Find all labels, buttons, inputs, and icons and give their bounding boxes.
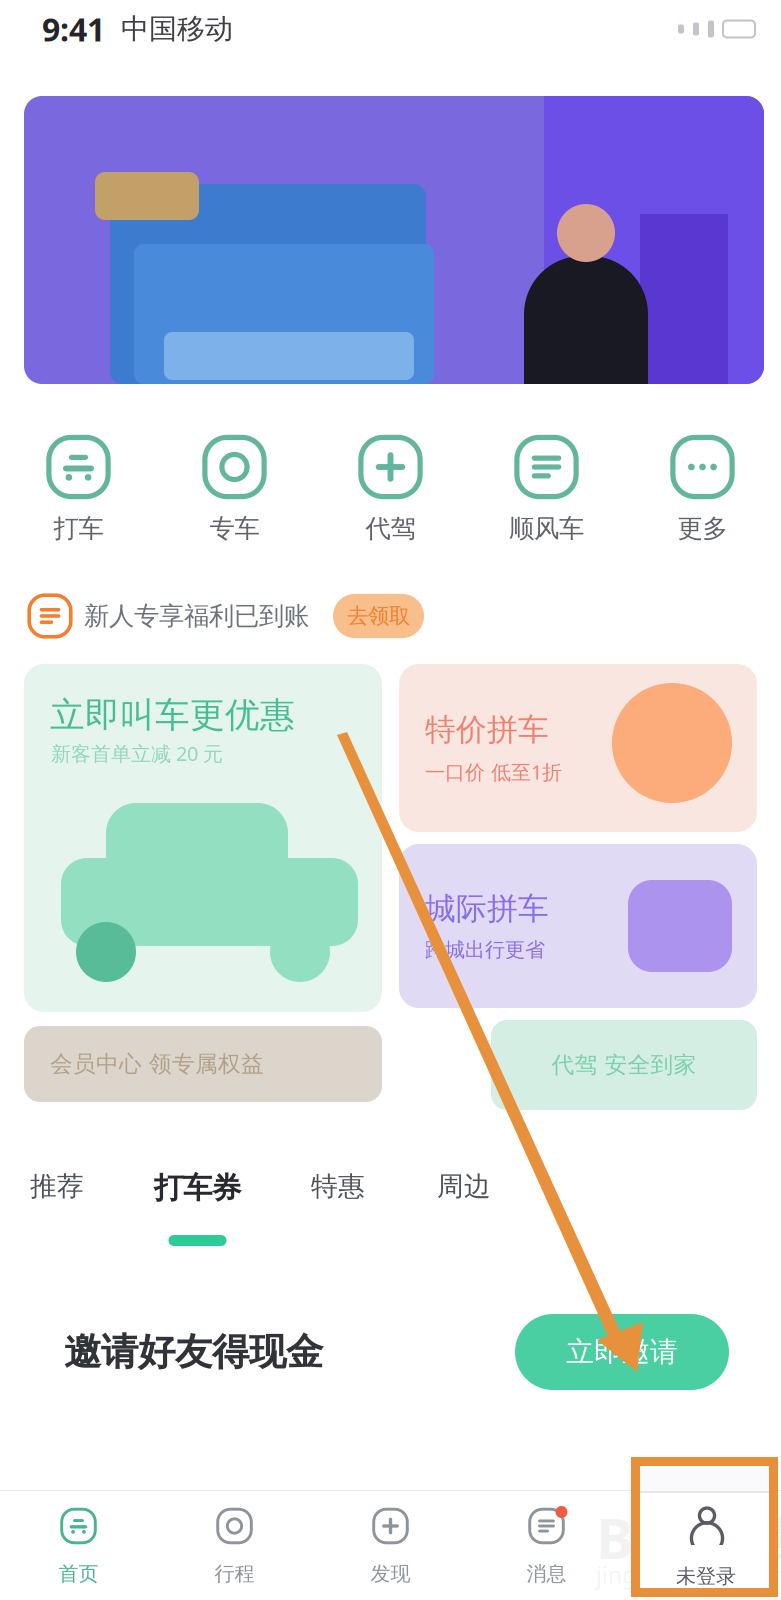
staticText: 消息 xyxy=(526,1561,566,1586)
staticText: 顺风车 xyxy=(509,513,584,544)
staticText: 推荐 xyxy=(30,1170,84,1203)
staticText: 特惠 xyxy=(311,1170,365,1203)
staticText: 更多 xyxy=(677,513,727,544)
button[interactable]: 城际拼车 xyxy=(399,844,757,1008)
staticText: 代驾 安全到家 xyxy=(551,1051,696,1079)
staticText: 立即叫车更优惠 xyxy=(50,694,295,737)
button[interactable]: 打车 xyxy=(0,400,156,570)
button[interactable]: 未登录 xyxy=(624,1491,780,1600)
button[interactable]: 推荐 xyxy=(28,1170,86,1243)
staticText: 周边 xyxy=(437,1170,491,1203)
staticText: 邀请好友得现金 xyxy=(64,1329,323,1375)
staticText: 一口价 低至1折 xyxy=(425,759,562,785)
staticText: 跨城出行更省 xyxy=(425,938,545,962)
staticText: 特价拼车 xyxy=(425,711,549,749)
button[interactable]: 首页 xyxy=(0,1491,156,1600)
button[interactable]: 消息 xyxy=(468,1491,624,1600)
staticText: 城际拼车 xyxy=(425,890,549,928)
staticText: 未登录 xyxy=(676,1564,736,1589)
button[interactable]: 专车 xyxy=(156,400,312,570)
button[interactable]: 发现 xyxy=(312,1491,468,1600)
staticText: 打车 xyxy=(53,513,103,544)
staticText: 新客首单立减 20 元 xyxy=(51,740,223,767)
button[interactable]: 代驾 xyxy=(312,400,468,570)
button[interactable]: 立即邀请 xyxy=(515,1314,729,1390)
button[interactable]: 行程 xyxy=(156,1491,312,1600)
staticText: 打车券 xyxy=(154,1170,241,1206)
staticText: 专车 xyxy=(209,513,259,544)
button[interactable]: 会员中心 领专属权益 xyxy=(24,1026,382,1102)
button[interactable] xyxy=(0,88,781,400)
button[interactable]: 特惠 xyxy=(309,1170,367,1243)
staticText: 9:41 xyxy=(42,8,105,50)
button[interactable]: 代驾 安全到家 xyxy=(491,1020,757,1110)
staticText: 新人专享福利已到账 xyxy=(84,600,309,631)
staticText: 立即邀请 xyxy=(566,1335,678,1369)
button[interactable]: 顺风车 xyxy=(468,400,624,570)
staticText: jingyan.baidu.com xyxy=(596,1560,781,1590)
staticText: 未登录 xyxy=(672,1561,732,1586)
button[interactable]: 特价拼车 xyxy=(399,664,757,832)
staticText: 会员中心 领专属权益 xyxy=(50,1050,264,1078)
staticText: 中国移动 xyxy=(105,12,233,46)
staticText: 发现 xyxy=(370,1561,410,1586)
button[interactable]: 打车券 xyxy=(154,1170,241,1246)
button[interactable]: 周边 xyxy=(435,1170,493,1243)
staticText: 首页 xyxy=(58,1561,98,1586)
button[interactable]: 更多 xyxy=(624,400,780,570)
button[interactable]: 新人专享福利已到账 xyxy=(0,570,781,662)
staticText: 去领取 xyxy=(347,603,410,629)
staticText: 代驾 xyxy=(365,513,415,544)
staticText: 行程 xyxy=(214,1561,254,1586)
staticText: Baidu 经验 xyxy=(596,1500,781,1575)
button[interactable]: 立即叫车更优惠 xyxy=(24,664,382,1012)
